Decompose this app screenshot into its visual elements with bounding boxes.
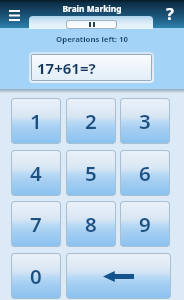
staticText: ? (166, 2, 174, 24)
staticText: 4 (30, 159, 42, 187)
staticText: 0 (30, 262, 42, 290)
staticText: 3 (139, 107, 151, 135)
staticText: 17+61=? (37, 58, 96, 78)
button[interactable]: 5 (67, 151, 115, 195)
staticText: 9 (139, 210, 151, 238)
button[interactable]: 6 (121, 151, 169, 195)
button[interactable]: 1 (12, 99, 60, 143)
staticText: 5 (85, 159, 97, 187)
button[interactable]: 8 (67, 202, 115, 246)
staticText: 8 (85, 210, 97, 238)
button[interactable]: Pause (67, 21, 116, 28)
button[interactable]: 0 (12, 254, 60, 298)
staticText: 1 (30, 107, 42, 135)
button[interactable]: 2 (67, 99, 115, 143)
button[interactable]: 7 (12, 202, 60, 246)
button[interactable]: 4 (12, 151, 60, 195)
button[interactable]: Backspace (67, 254, 170, 298)
staticText: Brain Marking (0, 3, 184, 14)
button[interactable]: Menu (3, 3, 26, 27)
staticText: Operations left: 10 (0, 34, 184, 45)
staticText: 7 (30, 210, 42, 238)
button[interactable]: 3 (121, 99, 169, 143)
staticText: 6 (139, 159, 151, 187)
staticText: 2 (85, 107, 97, 135)
button[interactable]: Help (159, 2, 181, 24)
button[interactable]: 9 (121, 202, 169, 246)
